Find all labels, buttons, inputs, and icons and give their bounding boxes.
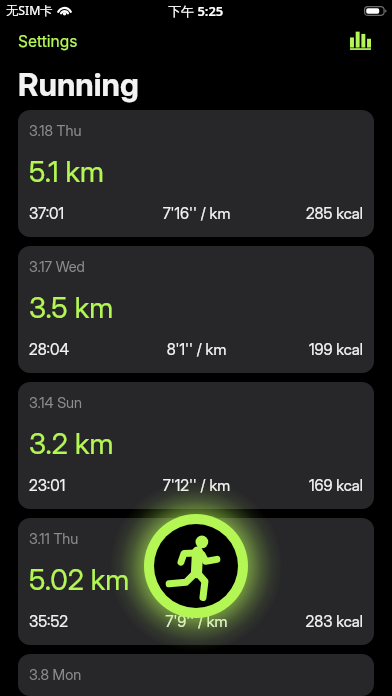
staticText: 3.14 Sun — [29, 394, 83, 412]
staticText: 37:01 — [29, 204, 141, 223]
button[interactable]: Start run — [144, 514, 248, 618]
staticText: 3.18 Thu — [29, 122, 82, 140]
button[interactable]: 3.14 Sun — [18, 382, 374, 509]
staticText: 35:52 — [29, 612, 141, 631]
staticText: 3.17 Wed — [29, 258, 85, 276]
staticText: 169 kcal — [252, 476, 363, 495]
button[interactable]: 3.18 Thu — [18, 110, 374, 237]
staticText: 283 kcal — [252, 612, 363, 631]
staticText: Running — [18, 65, 139, 103]
button[interactable]: 3.11 Thu — [18, 518, 374, 645]
staticText: 5.1 km — [29, 154, 104, 188]
staticText: 3.2 km — [29, 426, 114, 460]
button[interactable]: Statistics — [346, 27, 374, 55]
button[interactable]: 3.8 Mon — [18, 654, 374, 696]
staticText: 下午 5:25 — [168, 2, 224, 20]
staticText: 7'16'' / km — [141, 204, 252, 223]
staticText: 7'12'' / km — [141, 476, 252, 495]
staticText: 285 kcal — [252, 204, 363, 223]
staticText: Settings — [18, 32, 78, 51]
staticText: 28:04 — [29, 340, 141, 359]
staticText: 5.02 km — [29, 562, 130, 596]
staticText: 3.8 Mon — [29, 666, 82, 684]
button[interactable]: Settings — [0, 28, 86, 55]
staticText: 3.11 Thu — [29, 530, 79, 548]
staticText: 8'1'' / km — [141, 340, 252, 359]
staticText: 无SIM卡 — [6, 2, 53, 19]
button[interactable]: 3.17 Wed — [18, 246, 374, 373]
staticText: 7'9'' / km — [141, 612, 252, 631]
staticText: 3.5 km — [29, 290, 114, 324]
staticText: 199 kcal — [252, 340, 363, 359]
staticText: 23:01 — [29, 476, 141, 495]
